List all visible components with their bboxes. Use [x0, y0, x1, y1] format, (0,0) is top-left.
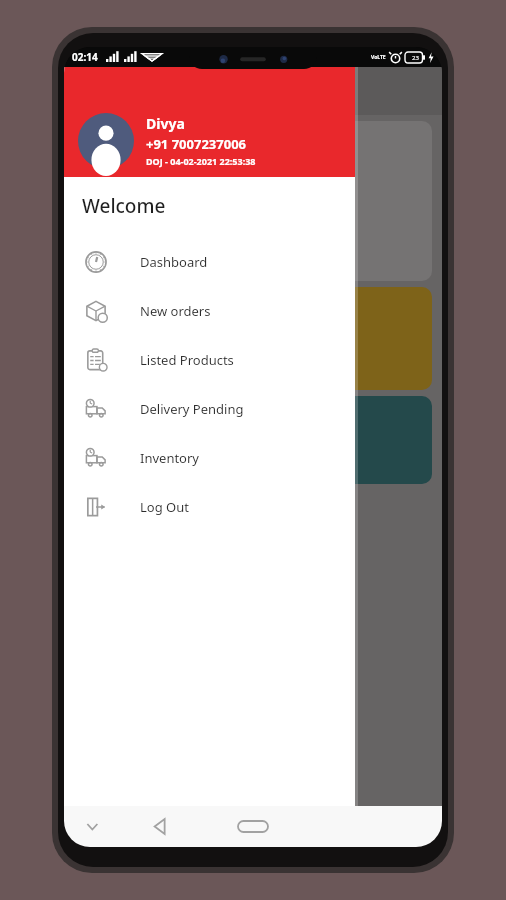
button[interactable]: Listed Products — [64, 335, 355, 384]
staticText: Inventory — [140, 449, 199, 467]
staticText: +91 7007237006 — [146, 135, 247, 153]
staticText: New orders — [140, 302, 211, 320]
staticText: Dashboard — [140, 253, 208, 271]
staticText: 02:14 — [72, 50, 98, 64]
staticText: Welcome — [82, 193, 166, 219]
staticText: Listed Products — [140, 351, 234, 369]
staticText: Log Out — [140, 498, 189, 516]
staticText: Delivery Pending — [140, 400, 244, 418]
staticText: 23 — [412, 54, 419, 62]
button[interactable]: Dashboard — [64, 237, 355, 286]
staticText: Divya — [146, 114, 185, 133]
button[interactable]: Inventory — [64, 433, 355, 482]
button[interactable]: Log Out — [64, 482, 355, 531]
staticText: DOJ - 04-02-2021 22:53:38 — [146, 155, 256, 167]
button[interactable]: Delivery Pending — [64, 384, 355, 433]
staticText: VoLTE — [371, 54, 386, 61]
button[interactable]: New orders — [64, 286, 355, 335]
